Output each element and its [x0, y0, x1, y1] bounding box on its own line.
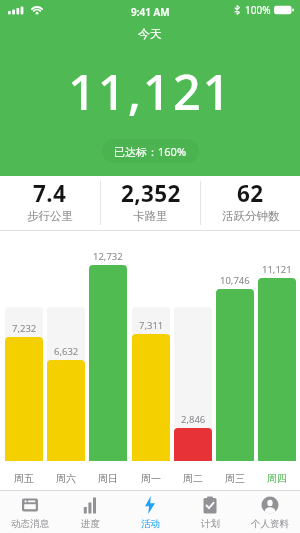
button[interactable] — [5, 337, 43, 461]
button[interactable]: 活动 — [120, 491, 180, 533]
button[interactable]: 7.4 — [0, 176, 100, 230]
staticText: 周四 — [267, 472, 287, 485]
staticText: 周一 — [141, 472, 161, 485]
staticText: 活动 — [141, 518, 160, 530]
button[interactable]: 进度 — [60, 491, 120, 533]
staticText: 计划 — [201, 518, 220, 530]
staticText: 2,846 — [181, 413, 206, 426]
button[interactable] — [132, 334, 170, 461]
staticText: 11,121 — [262, 263, 292, 276]
button[interactable]: 动态消息 — [0, 491, 60, 533]
staticText: 9:41 AM — [131, 5, 170, 19]
staticText: 10,746 — [220, 274, 250, 287]
button[interactable]: 计划 — [180, 491, 240, 533]
staticText: 已达标：160% — [114, 144, 187, 159]
staticText: 周三 — [225, 472, 245, 485]
staticText: 7,311 — [139, 319, 164, 332]
staticText: 6,632 — [54, 345, 79, 358]
button[interactable] — [258, 278, 296, 461]
staticText: 周二 — [183, 472, 203, 485]
staticText: 活跃分钟数 — [222, 209, 280, 223]
staticText: 11,121 — [68, 58, 233, 125]
button[interactable] — [174, 428, 212, 461]
staticText: 步行公里 — [27, 209, 73, 223]
staticText: 周日 — [98, 472, 118, 485]
staticText: 动态消息 — [11, 518, 49, 530]
button[interactable] — [216, 289, 254, 461]
button[interactable]: 2,352 — [101, 176, 200, 230]
button[interactable]: 个人资料 — [240, 491, 300, 533]
staticText: 进度 — [81, 518, 100, 530]
staticText: 100% — [245, 3, 271, 17]
button[interactable] — [47, 360, 85, 461]
staticText: 7,232 — [12, 322, 37, 335]
staticText: 周六 — [56, 472, 76, 485]
staticText: 7.4 — [33, 178, 67, 209]
button[interactable] — [89, 265, 127, 461]
staticText: 卡路里 — [133, 209, 168, 223]
staticText: 2,352 — [121, 178, 181, 209]
staticText: 62 — [237, 178, 264, 209]
staticText: 个人资料 — [251, 518, 289, 530]
button[interactable]: 已达标：160% — [102, 139, 199, 163]
staticText: 12,732 — [93, 250, 123, 263]
staticText: 周五 — [14, 472, 34, 485]
staticText: 今天 — [138, 26, 162, 41]
button[interactable]: 62 — [201, 176, 300, 230]
